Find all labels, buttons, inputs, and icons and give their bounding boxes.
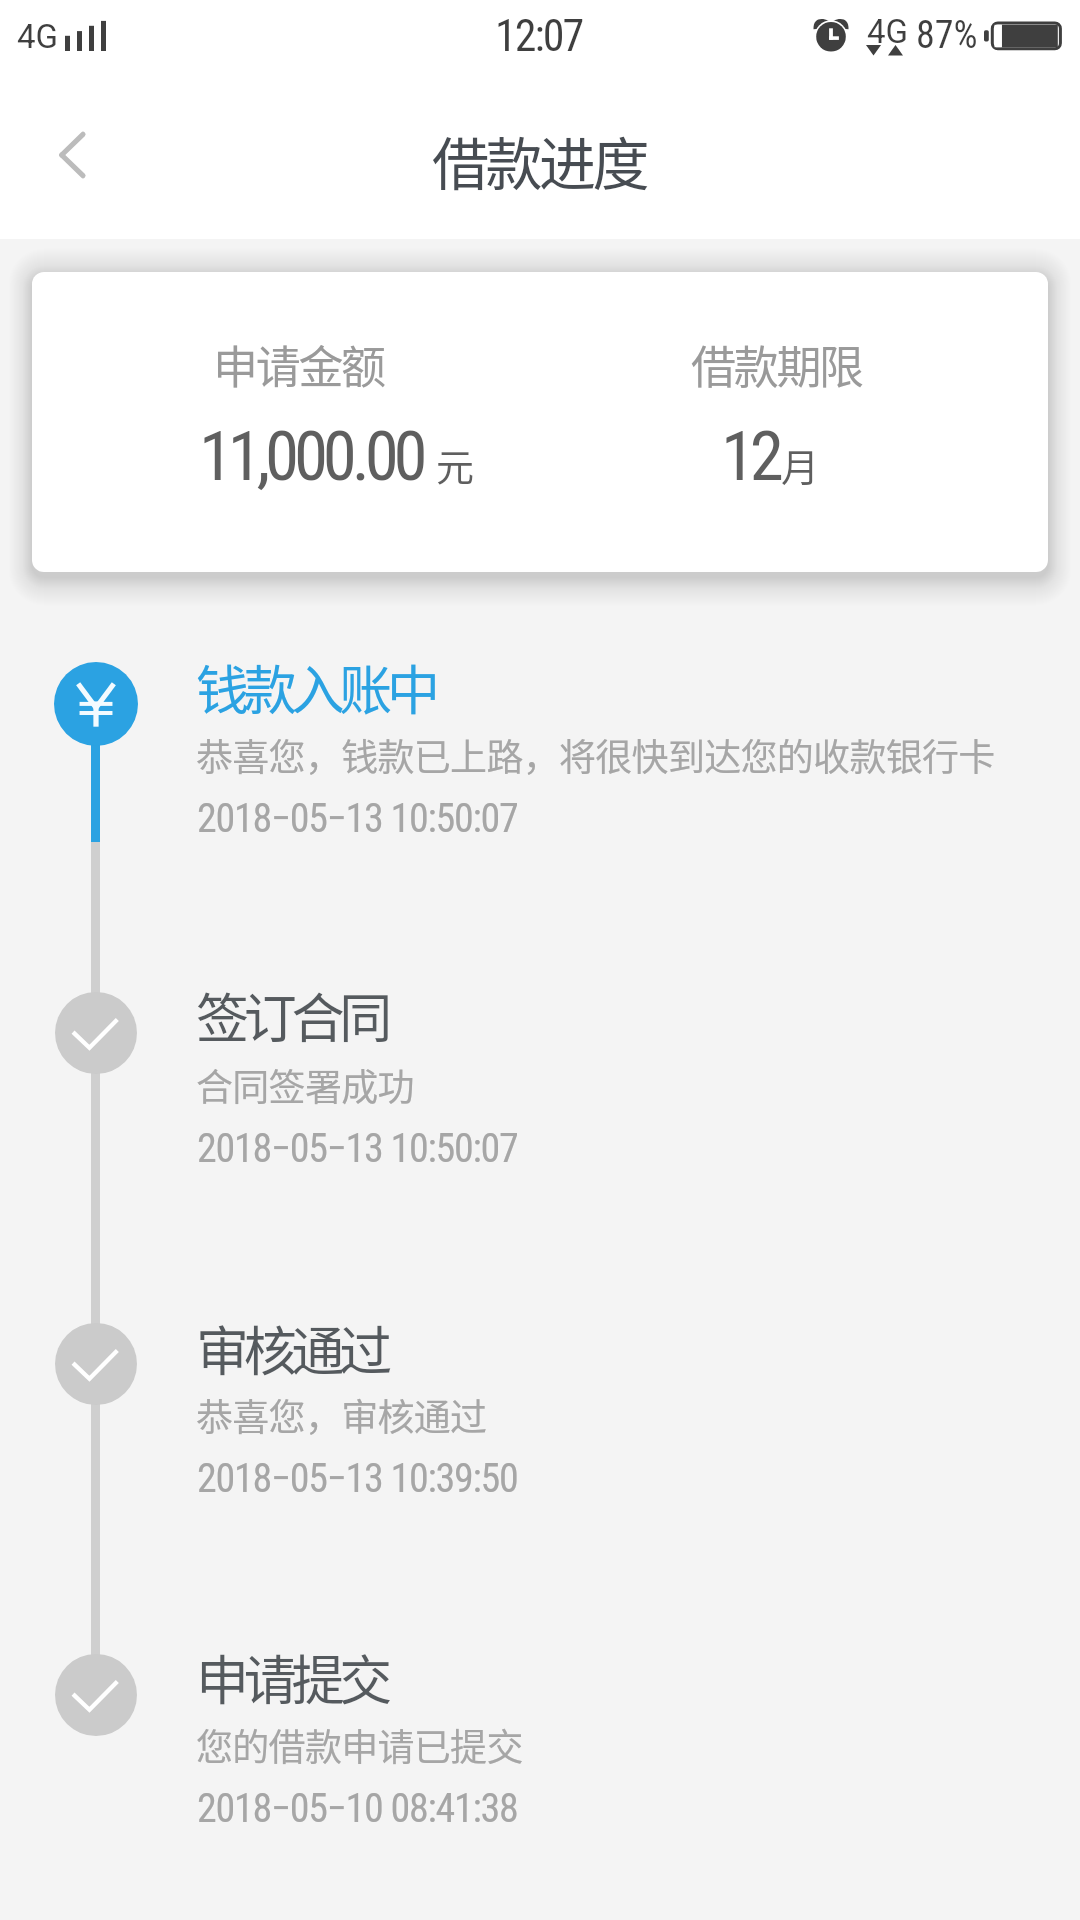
button[interactable]	[40, 1629, 1040, 1825]
staticText: 2018−05−13 10:50:07	[197, 1125, 518, 1172]
button[interactable]	[40, 1300, 1040, 1496]
staticText: 元	[436, 437, 475, 492]
staticText: 合同签署成功	[196, 1058, 414, 1112]
staticText: 2018−05−10 08:41:38	[197, 1785, 518, 1832]
staticText: 11,000.00	[199, 416, 423, 497]
staticText: 恭喜您，钱款已上路，将很快到达您的收款银行卡	[196, 728, 995, 782]
staticText: 12:07	[495, 10, 583, 62]
staticText: 4G	[867, 12, 909, 51]
staticText: 4G	[17, 17, 59, 56]
staticText: 87%	[916, 13, 978, 58]
button[interactable]	[40, 639, 1040, 835]
staticText: 签订合同	[196, 977, 387, 1054]
staticText: 审核通过	[196, 1310, 387, 1387]
staticText: 12	[721, 416, 779, 497]
staticText: 月	[781, 437, 820, 492]
staticText: 借款进度	[432, 119, 646, 202]
button[interactable]	[40, 967, 1040, 1163]
staticText: 2018−05−13 10:50:07	[197, 795, 518, 842]
staticText: 申请提交	[196, 1639, 387, 1716]
button[interactable]: Back	[26, 107, 122, 203]
staticText: 恭喜您，审核通过	[196, 1388, 487, 1442]
staticText: 借款期限	[691, 332, 862, 397]
staticText: 钱款入账中	[196, 649, 435, 726]
staticText: 您的借款申请已提交	[196, 1718, 523, 1772]
staticText: 2018−05−13 10:39:50	[197, 1455, 518, 1502]
staticText: 申请金额	[213, 332, 384, 397]
